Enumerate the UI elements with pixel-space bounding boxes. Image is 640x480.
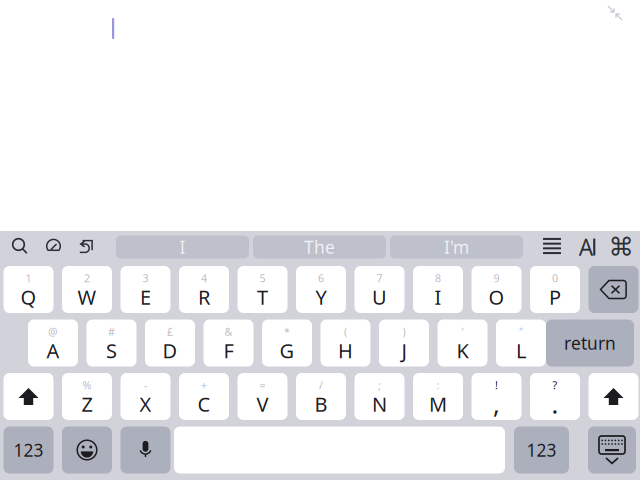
button[interactable]: 0 — [530, 266, 580, 313]
button[interactable]: Shift — [3, 373, 53, 420]
button[interactable]: I — [116, 235, 249, 258]
staticText: ? — [552, 378, 557, 392]
button[interactable]: £ — [145, 319, 195, 366]
button[interactable]: Text style — [576, 236, 598, 258]
staticText: F — [223, 337, 233, 364]
staticText: V — [256, 391, 268, 417]
staticText: ⌘ — [608, 233, 633, 261]
staticText: 8 — [435, 271, 441, 285]
staticText: @ — [48, 324, 58, 339]
button[interactable]: # — [86, 319, 136, 366]
button[interactable]: = — [237, 373, 287, 420]
button[interactable]: 1 — [3, 266, 53, 313]
staticText: 3 — [142, 271, 148, 285]
button[interactable]: & — [203, 319, 253, 366]
staticText: 123 — [526, 438, 556, 461]
button[interactable]: Space — [174, 426, 505, 473]
staticText: 123 — [13, 438, 43, 461]
button[interactable]: I'm — [390, 235, 523, 258]
staticText: O — [488, 284, 504, 310]
button[interactable]: ? — [530, 373, 580, 420]
staticText: ; — [378, 378, 381, 392]
staticText: - — [144, 378, 147, 392]
button[interactable]: ( — [320, 319, 370, 366]
staticText: . — [551, 387, 558, 421]
button[interactable]: + — [179, 373, 229, 420]
button[interactable]: 7 — [354, 266, 404, 313]
staticText: X — [139, 391, 151, 417]
staticText: + — [201, 378, 207, 392]
staticText: E — [140, 284, 151, 310]
button[interactable]: Formatting — [542, 236, 562, 256]
button[interactable]: 4 — [179, 266, 229, 313]
button[interactable]: 9 — [471, 266, 521, 313]
staticText: ) — [402, 324, 405, 339]
button[interactable]: * — [262, 319, 312, 366]
staticText: The — [304, 235, 335, 258]
button[interactable]: Dictation settings — [42, 236, 64, 258]
staticText: Y — [315, 284, 326, 310]
staticText: S — [106, 337, 117, 364]
button[interactable]: Return — [546, 319, 634, 366]
staticText: I'm — [444, 235, 469, 258]
staticText: I — [434, 284, 441, 310]
staticText: 6 — [318, 271, 324, 285]
button[interactable]: 8 — [413, 266, 463, 313]
staticText: 4 — [201, 271, 207, 285]
button[interactable]: @ — [28, 319, 78, 366]
staticText: N — [372, 391, 387, 417]
staticText: 2 — [84, 271, 90, 285]
button[interactable]: / — [296, 373, 346, 420]
button[interactable]: Numbers — [3, 426, 53, 473]
staticText: 1 — [25, 271, 31, 285]
button[interactable]: - — [120, 373, 170, 420]
button[interactable]: Hide keyboard — [588, 426, 636, 473]
button[interactable]: Collapse — [604, 2, 626, 24]
staticText: M — [429, 391, 447, 417]
button[interactable]: ; — [354, 373, 404, 420]
staticText: ! — [495, 378, 498, 392]
button[interactable]: Numbers — [514, 426, 569, 473]
staticText: & — [224, 324, 232, 339]
staticText: L — [516, 337, 526, 364]
staticText: G — [279, 337, 294, 364]
button[interactable]: Emoji — [62, 426, 112, 473]
button[interactable]: Search — [9, 236, 31, 258]
staticText: £ — [167, 324, 173, 339]
staticText: R — [198, 284, 210, 310]
button[interactable]: Undo — [75, 236, 97, 258]
staticText: 9 — [493, 271, 499, 285]
button[interactable]: Shift — [588, 373, 638, 420]
staticText: 0 — [552, 271, 558, 285]
button[interactable]: 5 — [237, 266, 287, 313]
button[interactable]: 2 — [62, 266, 112, 313]
button[interactable]: Delete — [588, 266, 638, 313]
staticText: return — [564, 331, 616, 354]
staticText: 5 — [259, 271, 265, 285]
button[interactable]: ! — [471, 373, 521, 420]
button[interactable]: ) — [379, 319, 429, 366]
button[interactable]: : — [413, 373, 463, 420]
staticText: U — [372, 284, 387, 310]
staticText: % — [82, 378, 91, 392]
staticText: W — [77, 284, 96, 310]
button[interactable]: 3 — [120, 266, 170, 313]
staticText: I — [179, 235, 185, 258]
staticText: , — [493, 387, 500, 421]
staticText: D — [162, 337, 177, 364]
staticText: / — [319, 378, 323, 392]
staticText: A — [46, 337, 59, 364]
button[interactable]: Shortcuts — [610, 236, 632, 258]
button[interactable]: Dictation — [120, 426, 170, 473]
button[interactable]: % — [62, 373, 112, 420]
staticText: # — [108, 324, 115, 339]
button[interactable]: " — [496, 319, 546, 366]
button[interactable]: 6 — [296, 266, 346, 313]
staticText: J — [401, 337, 406, 364]
button[interactable]: The — [253, 235, 386, 258]
staticText: H — [338, 337, 353, 364]
staticText: ( — [344, 324, 347, 339]
staticText: 7 — [376, 271, 382, 285]
staticText: = — [259, 378, 265, 392]
button[interactable]: ' — [437, 319, 487, 366]
